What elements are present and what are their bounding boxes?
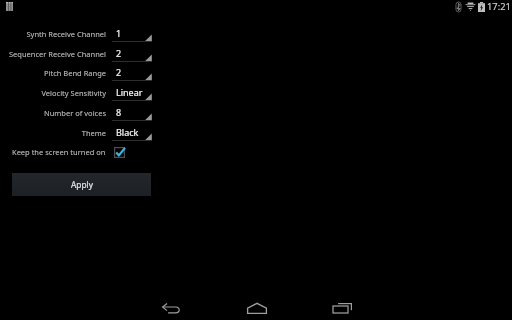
button[interactable]: Apply (12, 173, 151, 196)
button[interactable]: 8 (112, 103, 152, 123)
button[interactable]: 2 (112, 44, 152, 64)
button[interactable]: 2 (112, 63, 152, 83)
button[interactable]: 1 (112, 24, 152, 44)
staticText: 17:21 (487, 0, 511, 13)
staticText: Pitch Bend Range (43, 68, 106, 78)
staticText: Synth Receive Channel (26, 29, 106, 39)
staticText: 8 (116, 106, 122, 118)
staticText: Theme (81, 128, 106, 138)
button[interactable]: Keep the screen turned on, checked (110, 144, 128, 161)
staticText: Sequencer Receive Channel (8, 49, 106, 59)
button[interactable]: Back (128, 284, 213, 320)
staticText: Apply (71, 179, 93, 190)
button[interactable]: Home (214, 284, 299, 320)
staticText: Black (116, 126, 139, 138)
button[interactable]: Black (112, 123, 152, 143)
button[interactable]: Recent apps (300, 284, 385, 320)
staticText: Keep the screen turned on (12, 147, 106, 157)
staticText: 1 (116, 27, 122, 39)
staticText: 2 (116, 66, 122, 78)
staticText: 2 (116, 47, 122, 59)
button[interactable]: Linear (112, 83, 152, 103)
staticText: Velocity Sensitivity (41, 88, 106, 98)
staticText: Number of voices (43, 108, 106, 118)
staticText: Linear (116, 86, 143, 98)
